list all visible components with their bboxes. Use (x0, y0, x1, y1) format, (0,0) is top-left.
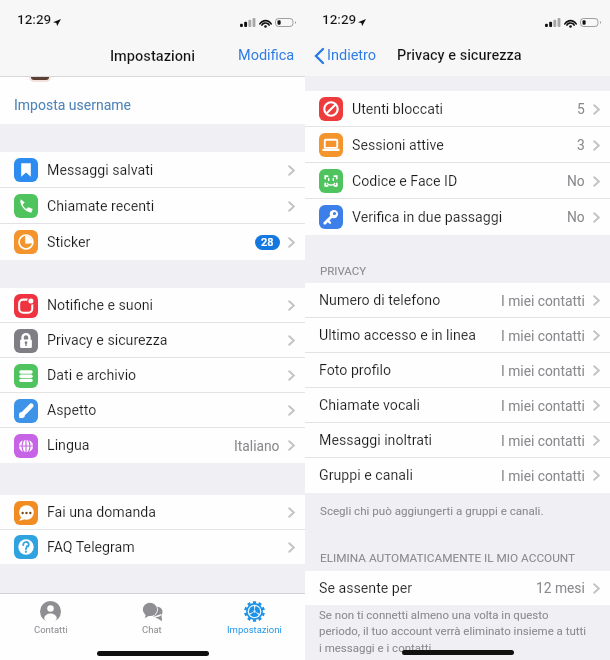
button[interactable]: Sticker (0, 224, 305, 260)
button[interactable]: Numero di telefono (305, 283, 610, 318)
staticText: 12:29 (322, 11, 357, 27)
button[interactable]: Impostazioni (203, 594, 305, 640)
staticText: Fai una domanda (47, 504, 156, 521)
staticText: Utenti bloccati (352, 101, 443, 118)
staticText: ELIMINA AUTOMATICAMENTE IL MIO ACCOUNT (320, 551, 576, 565)
staticText: Sessioni attive (352, 137, 444, 154)
staticText: No (567, 209, 585, 225)
staticText: Messaggi inoltrati (319, 432, 432, 449)
staticText: Sticker (47, 234, 91, 251)
button[interactable]: Chiamate vocali (305, 388, 610, 423)
staticText: PRIVACY (320, 264, 367, 277)
staticText: Ultimo accesso e in linea (319, 327, 476, 344)
button[interactable]: Sessioni attive (305, 127, 610, 163)
staticText: 12 mesi (536, 580, 585, 596)
staticText: Se assente per (319, 580, 413, 597)
button[interactable]: Indietro (305, 41, 383, 70)
staticText: Chiamate vocali (319, 397, 420, 414)
staticText: I miei contatti (501, 433, 585, 449)
staticText: Codice e Face ID (352, 173, 458, 190)
button[interactable]: Se assente per (305, 571, 610, 605)
button[interactable]: Aspetto (0, 393, 305, 428)
staticText: Contatti (34, 624, 68, 635)
button[interactable]: Ultimo accesso e in linea (305, 318, 610, 353)
button[interactable]: Notifiche e suoni (0, 288, 305, 323)
button[interactable]: Messaggi salvati (0, 152, 305, 188)
button[interactable]: Dati e archivio (0, 358, 305, 393)
staticText: Italiano (234, 438, 280, 454)
button[interactable]: Chiamate recenti (0, 188, 305, 224)
staticText: 3 (577, 137, 585, 153)
staticText: Privacy e sicurezza (47, 332, 168, 349)
staticText: FAQ Telegram (47, 539, 135, 556)
staticText: 28 (261, 236, 274, 249)
staticText: Se non ti connetti almeno una volta in q… (319, 608, 587, 655)
button[interactable]: FAQ Telegram (0, 530, 305, 564)
staticText: Gruppi e canali (319, 467, 413, 484)
staticText: I miei contatti (501, 328, 585, 344)
staticText: 5 (577, 101, 585, 117)
staticText: 12:29 (17, 11, 52, 27)
button[interactable]: Lingua (0, 428, 305, 463)
button[interactable]: Chat (101, 594, 203, 640)
staticText: Dati e archivio (47, 367, 137, 384)
button[interactable]: Verifica in due passaggi (305, 199, 610, 235)
button[interactable]: Messaggi inoltrati (305, 423, 610, 458)
staticText: Scegli chi può aggiungerti a gruppi e ca… (320, 504, 544, 518)
button[interactable]: Imposta username (0, 77, 305, 124)
staticText: Verifica in due passaggi (352, 209, 503, 226)
staticText: Privacy e sicurezza (397, 47, 522, 64)
staticText: Numero di telefono (319, 292, 441, 309)
staticText: Impostazioni (110, 47, 195, 64)
staticText: Modifica (238, 47, 295, 64)
staticText: Foto profilo (319, 362, 392, 379)
staticText: Lingua (47, 437, 90, 454)
staticText: Impostazioni (227, 624, 282, 635)
staticText: No (567, 173, 585, 189)
button[interactable]: Foto profilo (305, 353, 610, 388)
button[interactable]: Modifica (228, 41, 305, 70)
staticText: Chiamate recenti (47, 198, 155, 215)
staticText: Notifiche e suoni (47, 297, 154, 314)
staticText: I miei contatti (501, 363, 585, 379)
button[interactable]: Fai una domanda (0, 495, 305, 530)
staticText: Messaggi salvati (47, 162, 154, 179)
button[interactable]: Utenti bloccati (305, 91, 610, 127)
staticText: I miei contatti (501, 398, 585, 414)
staticText: I miei contatti (501, 293, 585, 309)
staticText: Indietro (327, 47, 377, 64)
staticText: Aspetto (47, 402, 97, 419)
button[interactable]: Privacy e sicurezza (0, 323, 305, 358)
button[interactable]: Codice e Face ID (305, 163, 610, 199)
button[interactable]: Gruppi e canali (305, 458, 610, 493)
staticText: Imposta username (14, 97, 131, 113)
staticText: I miei contatti (501, 468, 585, 484)
staticText: Chat (142, 624, 162, 635)
button[interactable]: Contatti (0, 594, 101, 640)
